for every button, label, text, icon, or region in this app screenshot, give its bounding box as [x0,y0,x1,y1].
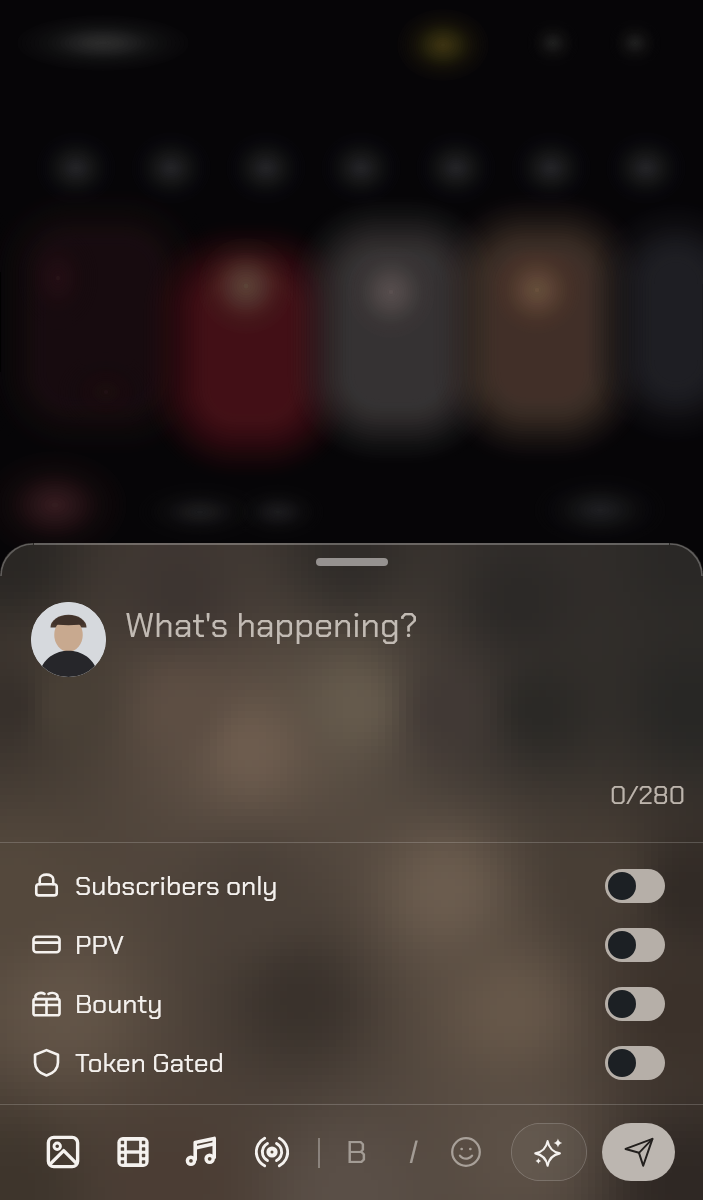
staticText: B [346,1131,367,1173]
staticText: What's happening? [125,603,418,647]
button[interactable]: Send [602,1123,675,1181]
button[interactable]: B [334,1130,378,1174]
staticText: Subscribers only [75,869,278,903]
button[interactable]: Bounty [0,974,703,1033]
staticText: Bounty [75,987,163,1021]
button[interactable]: Add image [39,1128,87,1176]
button[interactable]: Add audio [178,1128,226,1176]
button[interactable]: PPV [0,915,703,974]
staticText: I [407,1131,415,1173]
staticText: 0/280 [610,778,686,812]
staticText: Token Gated [75,1046,224,1080]
button[interactable]: Subscribers only [0,856,703,915]
button[interactable]: AI assist [511,1123,587,1181]
button[interactable]: Emoji [442,1128,490,1176]
button[interactable]: Profile [31,602,106,677]
button[interactable]: I [389,1130,433,1174]
button[interactable]: Add video [109,1128,157,1176]
button[interactable]: Go live [248,1128,296,1176]
staticText: PPV [75,928,125,962]
button[interactable]: Token Gated [0,1033,703,1092]
